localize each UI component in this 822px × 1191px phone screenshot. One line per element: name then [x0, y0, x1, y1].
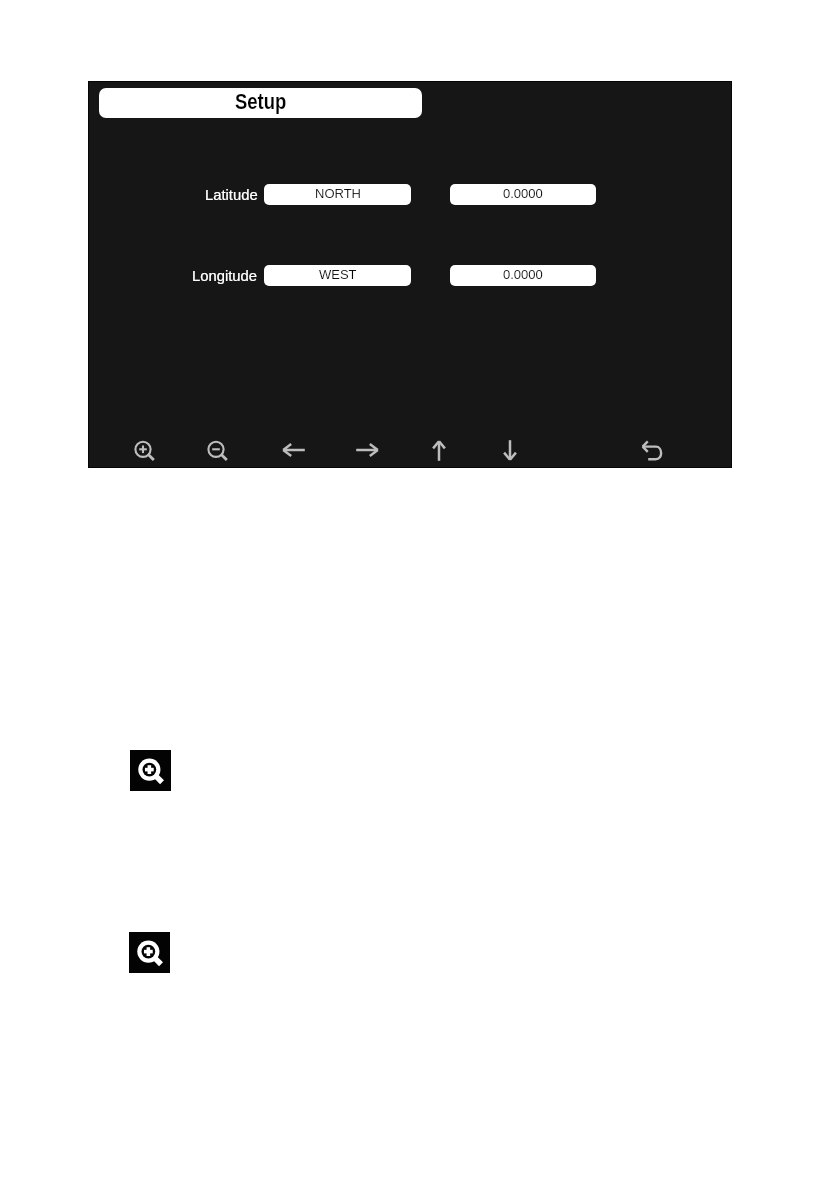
staticText: WEST: [319, 267, 357, 282]
button[interactable]: 0.0000: [450, 265, 596, 286]
staticText: Latitude: [205, 187, 258, 204]
staticText: 0.0000: [503, 267, 543, 282]
button[interactable]: Zoom in: [130, 750, 171, 791]
button[interactable]: Pan up: [425, 437, 453, 465]
button[interactable]: Zoom in: [130, 436, 158, 464]
staticText: NORTH: [315, 186, 361, 201]
button[interactable]: 0.0000: [450, 184, 596, 205]
button[interactable]: Pan right: [353, 436, 381, 464]
button[interactable]: Setup: [99, 88, 422, 118]
button[interactable]: Pan down: [496, 436, 524, 464]
staticText: Longitude: [192, 268, 258, 285]
button[interactable]: Back: [637, 436, 665, 464]
staticText: Setup: [235, 89, 287, 114]
button[interactable]: WEST: [264, 265, 411, 286]
staticText: 0.0000: [503, 186, 543, 201]
button[interactable]: Zoom in: [129, 932, 170, 973]
button[interactable]: NORTH: [264, 184, 411, 205]
button[interactable]: Zoom out: [203, 436, 231, 464]
button[interactable]: Pan left: [280, 436, 308, 464]
